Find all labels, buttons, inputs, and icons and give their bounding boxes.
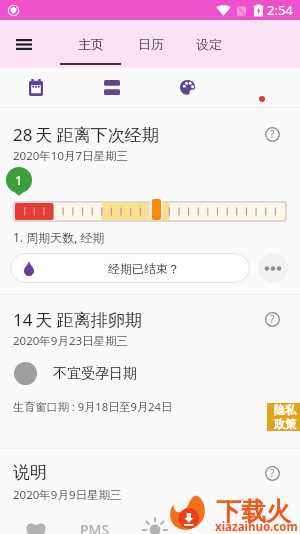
button[interactable]: PMS [72, 520, 118, 534]
staticText: 日历 [138, 36, 164, 52]
staticText: 1. 周期天数, 经期 [13, 229, 105, 245]
staticText: 2020年9月23日星期三 [13, 333, 129, 349]
staticText: 主页 [78, 36, 104, 52]
button[interactable]: Help [259, 306, 285, 332]
staticText: 下载火 [216, 496, 291, 527]
staticText: 隐私 [274, 403, 296, 417]
staticText: 设定 [196, 36, 222, 52]
staticText: 2020年9月9日星期三 [13, 487, 122, 503]
staticText: 政策 [274, 417, 296, 431]
staticText: 说明 [13, 462, 47, 483]
staticText: ? [270, 466, 275, 480]
button[interactable]: Theme [162, 68, 212, 107]
button[interactable]: 经期已结束？ [10, 253, 250, 283]
button[interactable]: Privacy policy [267, 403, 300, 431]
staticText: ? [270, 312, 275, 326]
staticText: 不宜受孕日期 [53, 365, 137, 383]
staticText: xiazaihuo.com [215, 519, 298, 534]
button[interactable]: Help [259, 121, 285, 147]
staticText: 14 天 距离排卵期 [13, 308, 142, 331]
button[interactable]: 日历 [120, 20, 181, 68]
staticText: 2020年10月7日星期三 [13, 148, 129, 164]
button[interactable]: 主页 [60, 20, 121, 68]
button[interactable]: Calendar [11, 68, 61, 107]
staticText: 生育窗口期 : 9月18日至9月24日 [13, 399, 173, 414]
staticText: 经期已结束？ [108, 261, 180, 276]
button[interactable]: More options [258, 253, 288, 283]
button[interactable]: Menu [6, 26, 42, 62]
button[interactable]: Help [259, 460, 285, 486]
staticText: PMS [80, 520, 110, 534]
staticText: 2:54 [267, 1, 293, 19]
button[interactable]: Cycle list [87, 68, 137, 107]
button[interactable]: 不宜受孕日期 [14, 362, 137, 385]
staticText: 1 [15, 171, 23, 189]
button[interactable]: Symptoms [134, 512, 176, 534]
button[interactable]: 设定 [178, 20, 239, 68]
button[interactable]: Favorites [12, 513, 60, 534]
staticText: ? [270, 127, 275, 141]
staticText: 28 天 距离下次经期 [13, 123, 159, 146]
